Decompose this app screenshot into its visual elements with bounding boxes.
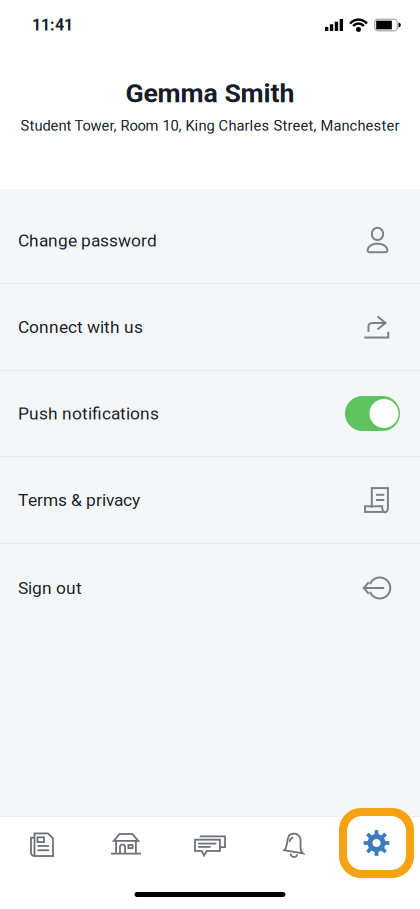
button[interactable]: Sign out	[0, 544, 420, 632]
button[interactable]: Notifications	[252, 817, 336, 872]
button[interactable]: Messages	[168, 817, 252, 872]
button[interactable]: Settings	[339, 816, 420, 878]
button[interactable]: News	[0, 817, 84, 872]
button[interactable]: Home	[84, 817, 168, 872]
staticText: 11:41	[32, 16, 73, 34]
staticText: Gemma Smith	[125, 78, 294, 108]
button[interactable]: Change password	[0, 198, 420, 283]
staticText: Student Tower, Room 10, King Charles Str…	[20, 117, 399, 134]
staticText: Connect with us	[18, 317, 143, 337]
staticText: Push notifications	[18, 404, 159, 423]
button[interactable]: Connect with us	[0, 284, 420, 370]
button[interactable]: Push notifications	[0, 371, 420, 456]
button[interactable]: Terms & privacy	[0, 457, 420, 543]
staticText: Terms & privacy	[18, 490, 140, 510]
staticText: Sign out	[18, 578, 82, 598]
staticText: Change password	[18, 231, 157, 250]
